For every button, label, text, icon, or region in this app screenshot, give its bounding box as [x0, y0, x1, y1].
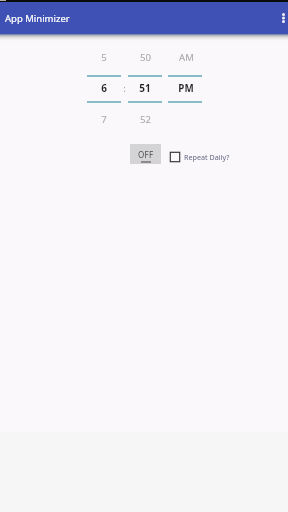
button[interactable]: OFF — [130, 144, 161, 164]
staticText: 52 — [140, 113, 151, 126]
staticText: 50 — [140, 51, 151, 64]
staticText: : — [123, 82, 126, 95]
staticText: 7 — [101, 113, 107, 126]
button[interactable]: Minute — [128, 45, 162, 131]
button[interactable]: Hour — [87, 45, 121, 131]
staticText: OFF — [138, 149, 154, 160]
staticText: 6 — [101, 81, 107, 95]
staticText: Repeat Daily? — [184, 152, 230, 162]
staticText: AM — [179, 51, 194, 64]
staticText: App Minimizer — [5, 12, 70, 25]
staticText: PM — [178, 82, 194, 95]
button[interactable]: AM or PM — [168, 45, 202, 131]
staticText: 5 — [101, 51, 107, 64]
staticText: 51 — [139, 81, 151, 95]
button[interactable]: Repeat Daily? — [170, 149, 230, 164]
button[interactable]: More options — [272, 6, 288, 30]
